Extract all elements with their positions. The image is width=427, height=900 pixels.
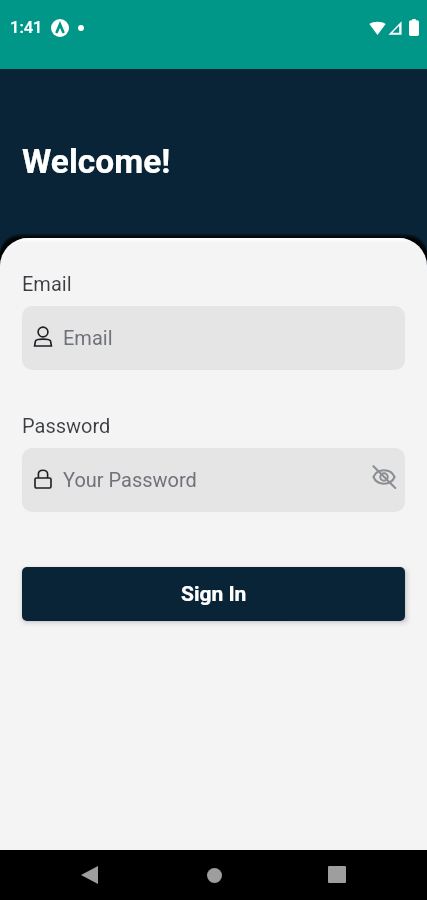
button[interactable]: Sign In: [22, 567, 405, 621]
button[interactable]: Recent apps: [313, 850, 361, 900]
staticText: Email: [63, 326, 113, 349]
button[interactable]: Your Password: [22, 448, 405, 512]
staticText: Welcome!: [22, 142, 171, 181]
staticText: Password: [22, 414, 111, 437]
button[interactable]: Home: [190, 850, 238, 900]
staticText: Your Password: [63, 468, 197, 491]
button[interactable]: Email: [22, 306, 405, 370]
staticText: Sign In: [181, 582, 247, 607]
staticText: 1:41: [10, 18, 43, 37]
staticText: Email: [22, 272, 72, 295]
button[interactable]: Show password: [367, 460, 401, 494]
button[interactable]: Back: [65, 850, 113, 900]
